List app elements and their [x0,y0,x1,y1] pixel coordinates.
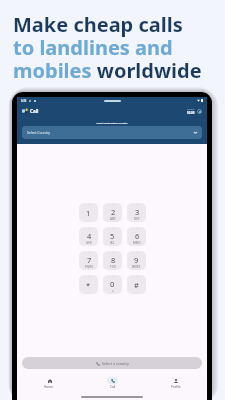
button[interactable]: 9 [127,251,146,270]
button[interactable]: Home [17,377,81,389]
staticText: 5 [110,231,115,241]
staticText: WXYZ [132,265,141,269]
staticText: + [112,289,114,293]
button[interactable]: Add balance [197,109,202,114]
staticText: # [134,280,139,290]
button[interactable]: 8 [103,251,122,270]
button[interactable]: Call [81,377,144,389]
button[interactable]: Select Country [22,126,202,139]
staticText: Home [44,385,54,389]
staticText: 2 [111,207,116,217]
button[interactable]: 0 [103,275,122,294]
staticText: Select destination country [96,121,128,124]
staticText: PQRS [85,265,93,269]
staticText: TUV [110,265,116,269]
staticText: 4:38 [21,99,27,103]
staticText: Make cheap calls to landlines and mobile… [13,11,202,84]
button[interactable]: 7 [79,251,98,270]
button[interactable]: * [79,275,98,294]
button[interactable]: 3 [127,203,146,222]
staticText: Select a country [102,361,129,366]
staticText: 0 [110,279,115,289]
staticText: MNO [133,241,141,245]
staticText: Balance [187,108,195,111]
button[interactable]: 2 [103,203,122,222]
button[interactable]: Select a country [22,357,202,369]
staticText: 3 [135,207,140,217]
staticText: 9 [134,255,139,265]
staticText: $0.00 [187,111,195,115]
staticText: Call [110,385,116,389]
staticText: 7 [87,255,92,265]
staticText: 8 [111,255,116,265]
staticText: DEF [134,217,140,221]
button[interactable]: # [127,275,146,294]
staticText: * [86,280,91,290]
button[interactable]: 1 [79,203,98,222]
staticText: Profile [171,385,181,389]
button[interactable]: 5 [103,227,122,246]
staticText: 1 [86,208,91,218]
staticText: 4 [87,231,92,241]
staticText: JKL [110,241,115,245]
staticText: 6 [135,231,140,241]
staticText: Call [30,108,39,114]
staticText: Select Country [27,130,51,135]
staticText: GHI [86,241,92,245]
button[interactable]: 6 [127,227,146,246]
button[interactable]: Profile [144,377,207,389]
button[interactable]: 4 [79,227,98,246]
staticText: ABC [110,217,116,221]
